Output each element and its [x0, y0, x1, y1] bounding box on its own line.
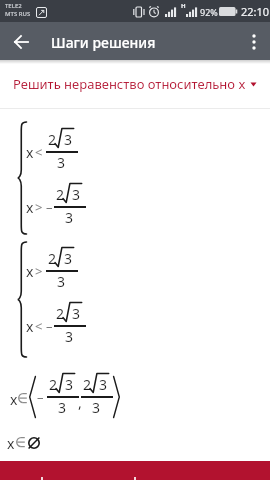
button[interactable] [4, 25, 38, 59]
staticText: 3 [72, 185, 81, 204]
staticText: 3 [65, 375, 74, 394]
staticText: 2 [49, 375, 58, 394]
staticText: 3 [64, 249, 73, 268]
staticText: 3 [92, 398, 101, 417]
staticText: x [10, 390, 18, 409]
staticText: 3 [64, 130, 73, 149]
staticText: x [26, 317, 34, 336]
staticText: x [26, 262, 34, 281]
button[interactable] [240, 25, 268, 59]
staticText: 2 [48, 130, 57, 149]
staticText: > [35, 198, 43, 216]
staticText: x [7, 434, 15, 453]
staticText: x [26, 143, 34, 162]
staticText: 22:10 [241, 4, 270, 19]
staticText: 3 [65, 208, 74, 227]
staticText: , [78, 393, 82, 412]
staticText: – [37, 388, 44, 406]
staticText: 2 [56, 185, 65, 204]
staticText: – [46, 198, 53, 216]
staticText: 92% [200, 6, 218, 18]
staticText: Решить неравенство относительно x [13, 75, 246, 93]
staticText: 3 [57, 272, 66, 291]
staticText: – [46, 317, 53, 335]
staticText: 3 [65, 327, 74, 346]
staticText: 2 [83, 375, 92, 394]
staticText: MTS RUS [5, 10, 31, 18]
staticText: 3 [58, 398, 67, 417]
button[interactable] [0, 461, 270, 480]
staticText: 2 [56, 304, 65, 323]
staticText: x [26, 198, 34, 217]
staticText: 3 [57, 153, 66, 172]
staticText: H [181, 2, 186, 10]
staticText: < [35, 143, 43, 161]
staticText: 3 [72, 304, 81, 323]
staticText: 2 [48, 249, 57, 268]
button[interactable]: Решить неравенство относительно x [0, 60, 270, 108]
staticText: < [35, 317, 43, 335]
staticText: TELE2 [5, 2, 22, 10]
staticText: 3 [99, 375, 108, 394]
staticText: > [35, 262, 43, 280]
staticText: Шаги решения [51, 33, 156, 52]
